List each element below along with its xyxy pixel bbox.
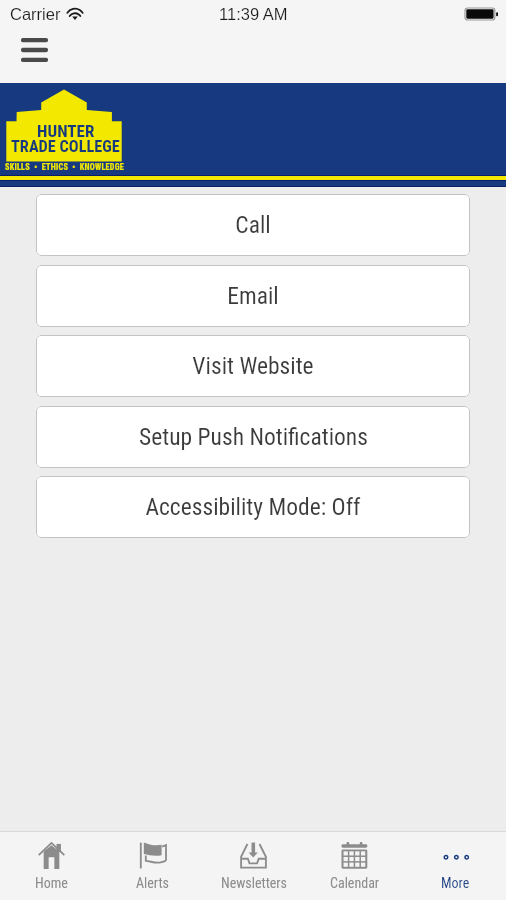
button[interactable]: Email xyxy=(36,265,470,327)
staticText: Email xyxy=(227,282,279,310)
staticText: Visit Website xyxy=(192,352,314,380)
staticText: More xyxy=(441,875,470,891)
button[interactable]: Call xyxy=(36,194,470,256)
staticText: Newsletters xyxy=(221,875,287,891)
button[interactable]: Setup Push Notifications xyxy=(36,406,470,468)
staticText: Carrier xyxy=(10,5,61,23)
button[interactable]: Alerts xyxy=(102,832,203,900)
button[interactable]: More xyxy=(405,832,506,900)
button[interactable]: Calendar xyxy=(304,832,405,900)
button[interactable]: Open navigation menu xyxy=(5,28,63,72)
staticText: TRADE COLLEGE xyxy=(11,137,120,156)
button[interactable]: Visit Website xyxy=(36,335,470,397)
staticText: Home xyxy=(35,875,68,891)
staticText: 11:39 AM xyxy=(219,5,288,23)
staticText: Accessibility Mode: Off xyxy=(145,493,361,521)
staticText: Alerts xyxy=(136,875,169,891)
button[interactable]: Home xyxy=(0,832,102,900)
button[interactable]: Newsletters xyxy=(203,832,304,900)
staticText: Calendar xyxy=(330,875,380,891)
staticText: Setup Push Notifications xyxy=(139,423,368,451)
button[interactable]: Accessibility Mode: Off xyxy=(36,476,470,538)
staticText: HUNTER xyxy=(37,121,95,141)
staticText: Call xyxy=(235,211,271,239)
staticText: SKILLS • ETHICS • KNOWLEDGE xyxy=(5,162,125,172)
